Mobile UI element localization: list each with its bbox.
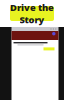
staticText: Story (19, 13, 44, 26)
button[interactable]: Drive the (10, 6, 54, 21)
staticText: Drive the (10, 1, 54, 13)
button[interactable] (43, 47, 54, 50)
